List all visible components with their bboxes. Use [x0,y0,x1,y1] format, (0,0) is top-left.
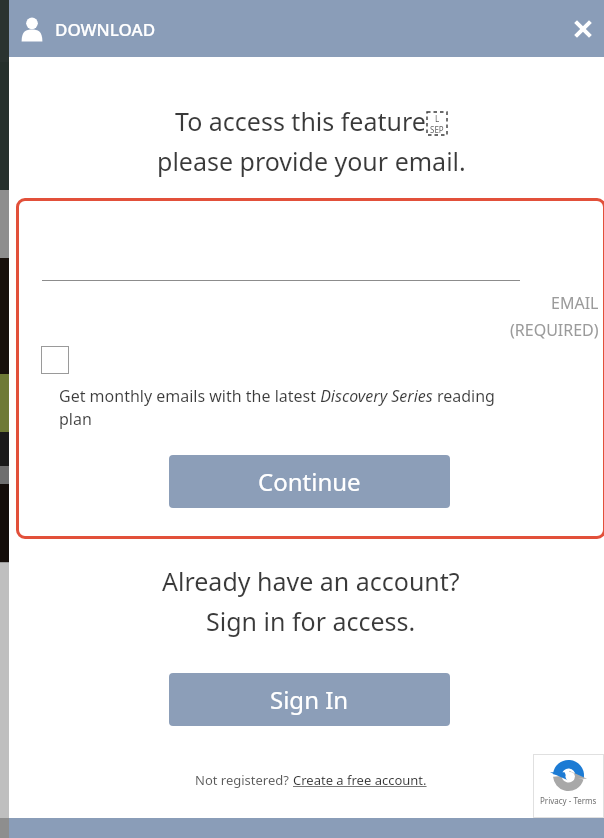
staticText: To access this feature [175,104,426,138]
staticText: Sign in for access. [206,604,416,638]
staticText: EMAIL [551,292,599,314]
staticText: Get monthly emails with the latest Disco… [59,385,501,430]
button[interactable]: Continue [169,455,450,508]
button[interactable]: DOWNLOAD [17,12,158,46]
staticText: Continue [258,465,361,498]
staticText: Create a free account. [293,771,427,789]
button[interactable]: Sign In [169,673,450,726]
staticText: Not registered? [195,771,293,789]
staticText: Sign In [270,683,349,716]
button[interactable]: Close [561,7,604,51]
staticText: Privacy - Terms [540,795,597,806]
staticText: (REQUIRED) [510,319,599,341]
button[interactable]: Subscribe to monthly emails [41,346,71,376]
button[interactable]: Create a free account. [293,771,427,789]
staticText: Already have an account? [162,564,460,598]
staticText: DOWNLOAD [55,18,156,41]
button[interactable]: Email input [42,259,520,281]
staticText: L [435,113,440,124]
staticText: please provide your email. [157,144,466,178]
staticText: SEP [430,124,444,135]
button[interactable]: reCAPTCHA Privacy and Terms [533,754,604,818]
